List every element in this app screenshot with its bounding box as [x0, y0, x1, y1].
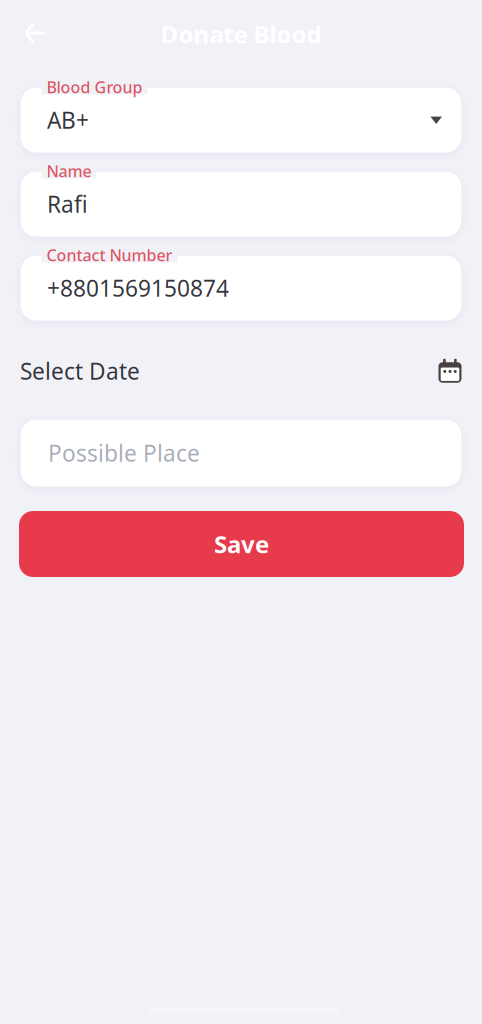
button[interactable]: Select Date: [20, 349, 462, 393]
staticText: +8801569150874: [47, 273, 229, 303]
staticText: Donate Blood: [160, 18, 321, 50]
button[interactable]: Possible Place: [20, 419, 462, 487]
button[interactable]: AB+: [20, 87, 462, 153]
staticText: AB+: [47, 105, 89, 135]
button[interactable]: +8801569150874: [20, 255, 462, 321]
staticText: Blood Group: [46, 76, 142, 98]
staticText: Rafi: [47, 189, 88, 219]
staticText: Select Date: [20, 356, 140, 386]
staticText: Name: [46, 160, 91, 182]
staticText: Possible Place: [48, 438, 200, 468]
staticText: Save: [214, 528, 269, 560]
button[interactable]: Back: [12, 11, 58, 55]
button[interactable]: Rafi: [20, 171, 462, 237]
staticText: Contact Number: [46, 244, 172, 266]
button[interactable]: Save: [19, 511, 464, 577]
